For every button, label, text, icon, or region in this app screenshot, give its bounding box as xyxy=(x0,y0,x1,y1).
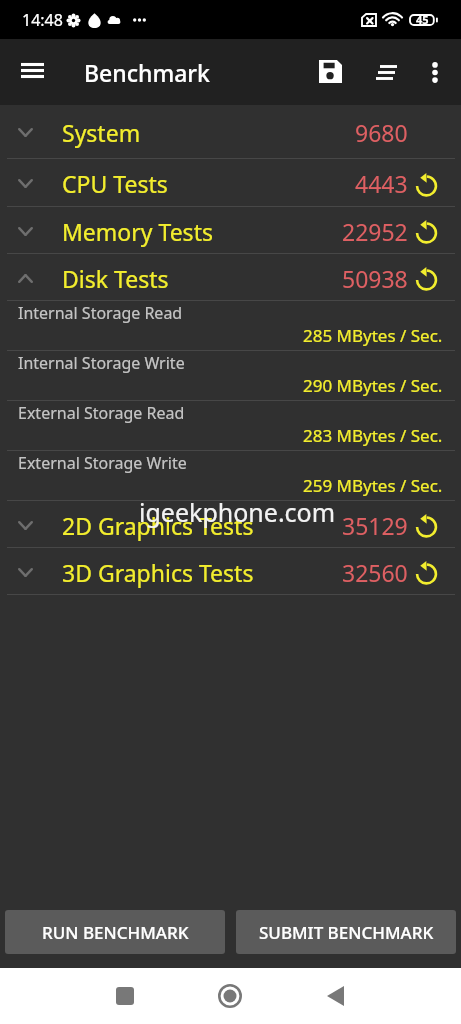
button[interactable]: SUBMIT BENCHMARK xyxy=(236,910,456,954)
button[interactable]: 2D Graphics Tests xyxy=(0,501,461,547)
button[interactable]: Sort xyxy=(363,49,409,95)
button[interactable]: External Storage Read xyxy=(0,401,461,450)
button[interactable]: 3D Graphics Tests xyxy=(0,548,461,594)
button[interactable]: Internal Storage Read xyxy=(0,301,461,350)
button[interactable]: Back xyxy=(307,968,363,1024)
button[interactable]: Menu xyxy=(10,48,54,92)
staticText: 259 MBytes / Sec. xyxy=(303,474,443,497)
button[interactable]: Home xyxy=(202,968,258,1024)
staticText: igeekphone.com xyxy=(139,495,336,529)
button[interactable]: Rerun CPU Tests xyxy=(413,171,439,197)
staticText: 45 xyxy=(416,12,429,27)
staticText: 22952 xyxy=(342,216,408,247)
button[interactable]: Save xyxy=(307,48,353,94)
staticText: SUBMIT BENCHMARK xyxy=(259,921,434,944)
staticText: 9680 xyxy=(355,117,408,148)
staticText: Disk Tests xyxy=(62,263,169,294)
staticText: 2D Graphics Tests xyxy=(62,510,254,541)
staticText: 32560 xyxy=(342,557,408,588)
staticText: Internal Storage Read xyxy=(18,302,183,324)
button[interactable]: Recents xyxy=(97,968,153,1024)
button[interactable]: Rerun Disk Tests xyxy=(413,265,439,291)
button[interactable]: Disk Tests xyxy=(0,254,461,300)
button[interactable]: External Storage Write xyxy=(0,451,461,500)
staticText: Internal Storage Write xyxy=(18,352,185,374)
staticText: System xyxy=(62,117,141,148)
staticText: 283 MBytes / Sec. xyxy=(303,424,443,447)
staticText: 285 MBytes / Sec. xyxy=(303,324,443,347)
staticText: 290 MBytes / Sec. xyxy=(303,374,443,397)
staticText: Benchmark xyxy=(84,57,210,88)
staticText: Memory Tests xyxy=(62,216,213,247)
staticText: 14:48 xyxy=(22,9,63,31)
staticText: RUN BENCHMARK xyxy=(42,921,189,944)
staticText: CPU Tests xyxy=(62,168,168,199)
button[interactable]: Memory Tests xyxy=(0,207,461,253)
button[interactable]: Rerun 3D Graphics Tests xyxy=(413,559,439,585)
button[interactable]: CPU Tests xyxy=(0,159,461,206)
button[interactable]: Internal Storage Write xyxy=(0,351,461,400)
staticText: 50938 xyxy=(342,263,408,294)
staticText: 4443 xyxy=(355,168,408,199)
button[interactable]: RUN BENCHMARK xyxy=(5,910,225,954)
button[interactable]: Rerun Memory Tests xyxy=(413,218,439,244)
staticText: 3D Graphics Tests xyxy=(62,557,254,588)
button[interactable]: System xyxy=(0,105,461,158)
button[interactable]: Rerun 2D Graphics Tests xyxy=(413,512,439,538)
staticText: 35129 xyxy=(342,510,408,541)
staticText: External Storage Read xyxy=(18,402,185,424)
staticText: External Storage Write xyxy=(18,452,187,474)
button[interactable]: More options xyxy=(412,49,458,95)
